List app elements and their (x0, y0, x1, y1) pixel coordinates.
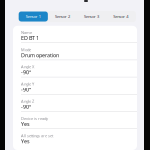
staticText: Yes (21, 138, 30, 145)
staticText: Device is ready (21, 116, 48, 121)
button[interactable]: Angle Z (13, 95, 137, 112)
staticText: Yes (21, 120, 30, 127)
button[interactable]: Sensor 1 (19, 11, 48, 21)
staticText: Angle Z (21, 98, 34, 104)
staticText: Sensor 1 (26, 14, 41, 19)
staticText: Angle X (21, 64, 34, 69)
button[interactable]: All settings are set (13, 129, 137, 146)
button[interactable]: Sensor 2 (48, 11, 77, 21)
staticText: -90° (21, 103, 31, 110)
staticText: Sensor 4 (113, 14, 128, 19)
staticText: -90° (21, 86, 31, 93)
staticText: Sensor 2 (55, 14, 70, 19)
button[interactable]: Mode (13, 43, 137, 60)
button[interactable]: Sensor 4 (106, 11, 135, 21)
staticText: -90° (21, 69, 31, 76)
button[interactable]: Device is ready (13, 112, 137, 129)
button[interactable]: Sensor 3 (77, 11, 106, 21)
staticText: Angle Y (21, 81, 34, 87)
staticText: Drum operation (21, 52, 59, 59)
staticText: Mode (21, 47, 31, 52)
button[interactable]: Angle Y (13, 77, 137, 95)
staticText: Sensor 3 (84, 14, 99, 19)
button[interactable]: Angle X (13, 60, 137, 77)
staticText: Name (21, 30, 32, 35)
button[interactable]: Name (13, 26, 137, 43)
staticText: All settings are set (21, 133, 53, 138)
staticText: ED BT 1 (21, 34, 39, 41)
